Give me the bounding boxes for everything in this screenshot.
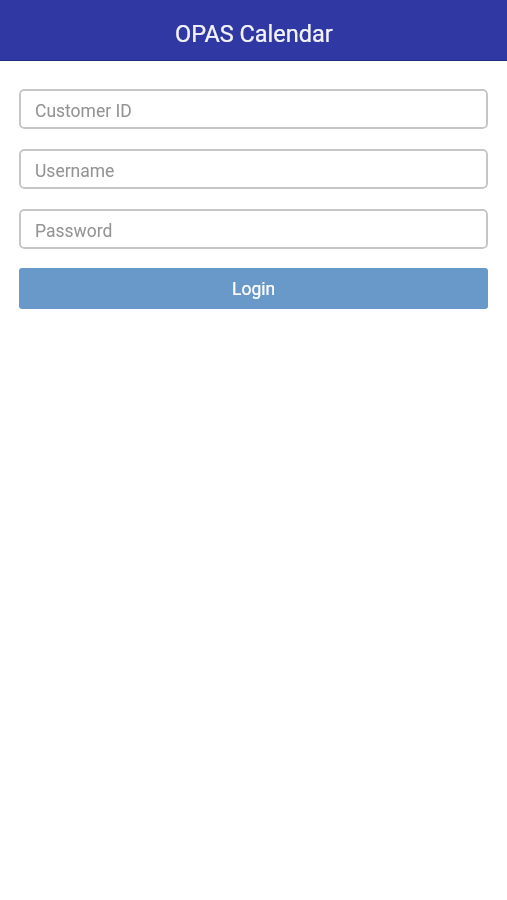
staticText: Password xyxy=(35,221,113,242)
staticText: OPAS Calendar xyxy=(175,20,333,48)
staticText: Username xyxy=(35,161,115,182)
button[interactable]: Username xyxy=(19,149,488,189)
button[interactable]: Login xyxy=(19,268,488,309)
staticText: Customer ID xyxy=(35,101,132,122)
button[interactable]: Customer ID xyxy=(19,89,488,129)
button[interactable]: Password xyxy=(19,209,488,249)
staticText: Login xyxy=(232,279,276,300)
